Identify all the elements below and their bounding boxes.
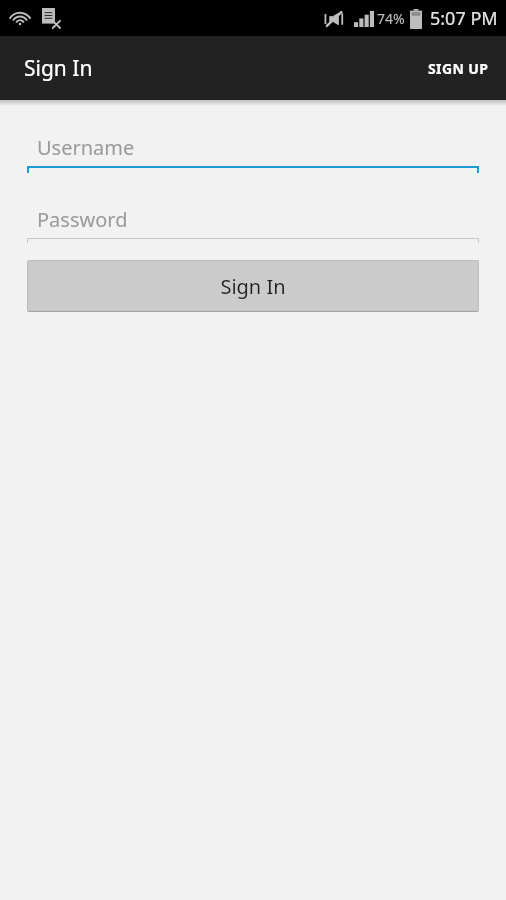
button[interactable]: SIGN UP [411,41,506,96]
staticText: Password [37,206,128,233]
staticText: Sign In [220,273,286,300]
button[interactable]: Sign In [27,260,479,312]
staticText: SIGN UP [428,59,489,78]
button[interactable]: Username [27,128,479,173]
staticText: 74% [377,9,405,28]
staticText: Username [37,134,135,161]
staticText: 5:07 PM [430,6,498,31]
button[interactable]: Password [27,200,479,243]
staticText: Sign In [24,54,93,83]
